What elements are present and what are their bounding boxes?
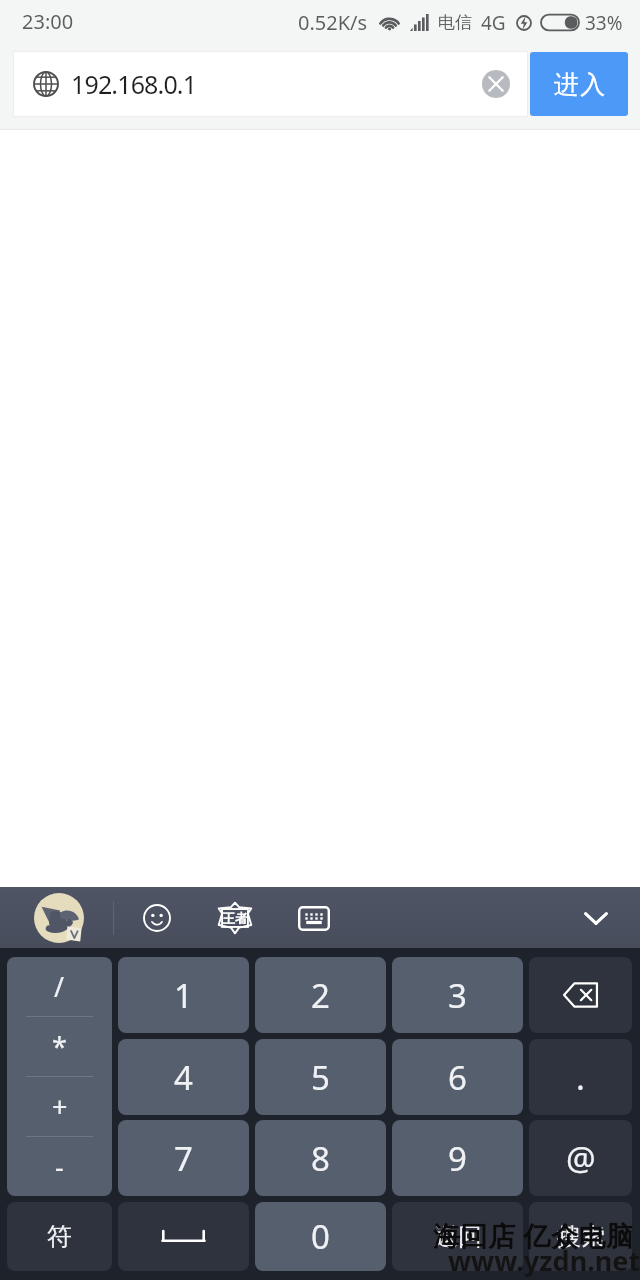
staticText: 4G (481, 10, 506, 36)
button[interactable]: 9 (392, 1120, 523, 1196)
staticText: 192.168.0.1 (71, 67, 197, 101)
button[interactable]: operators (7, 957, 112, 1196)
staticText: 6 (448, 1055, 467, 1100)
button[interactable]: Input method logo (34, 893, 84, 943)
button[interactable]: Keyboard layout (291, 895, 337, 941)
button[interactable]: Backspace (529, 957, 632, 1033)
button[interactable]: Space (118, 1202, 249, 1271)
staticText: 0 (311, 1214, 330, 1259)
staticText: 3 (448, 973, 467, 1018)
button[interactable]: 0 (255, 1202, 386, 1271)
button[interactable]: 6 (392, 1039, 523, 1115)
button[interactable]: 8 (255, 1120, 386, 1196)
staticText: * (52, 1028, 67, 1065)
button[interactable]: 搜索 (529, 1202, 632, 1271)
staticText: 电信 (438, 12, 472, 33)
staticText: - (55, 1148, 64, 1185)
staticText: 4 (174, 1055, 193, 1100)
button[interactable]: Game keyboard (212, 895, 258, 941)
staticText: 7 (174, 1136, 193, 1181)
staticText: 符 (47, 1221, 72, 1252)
button[interactable]: 4 (118, 1039, 249, 1115)
button[interactable]: Emoji (134, 895, 180, 941)
staticText: 1 (174, 973, 193, 1018)
staticText: / (54, 968, 65, 1005)
staticText: 9 (448, 1136, 467, 1181)
button[interactable]: 返回 (392, 1202, 523, 1271)
button[interactable]: 3 (392, 957, 523, 1033)
staticText: 0.52K/s (298, 9, 368, 36)
button[interactable]: 2 (255, 957, 386, 1033)
staticText: 王者 (222, 910, 248, 926)
button[interactable]: . (529, 1039, 632, 1115)
staticText: www.yzdn.net (448, 1242, 640, 1279)
staticText: 返回 (434, 1222, 482, 1252)
staticText: 23:00 (22, 8, 74, 35)
button[interactable]: Hide keyboard (573, 895, 619, 941)
staticText: 2 (311, 973, 330, 1018)
staticText: 5 (311, 1055, 330, 1100)
button[interactable]: 符 (7, 1202, 112, 1271)
staticText: + (52, 1088, 68, 1125)
button[interactable]: 192.168.0.1 (14, 52, 527, 116)
button[interactable]: 7 (118, 1120, 249, 1196)
staticText: 进入 (553, 69, 606, 100)
staticText: 海回店 亿众电脑 (433, 1217, 634, 1254)
staticText: @ (566, 1136, 596, 1181)
staticText: 搜索 (557, 1222, 605, 1252)
staticText: . (576, 1055, 585, 1100)
button[interactable]: 1 (118, 957, 249, 1033)
button[interactable]: @ (529, 1120, 632, 1196)
button[interactable]: Clear text (470, 58, 522, 110)
button[interactable]: 进入 (530, 52, 628, 116)
staticText: 8 (311, 1136, 330, 1181)
button[interactable]: 5 (255, 1039, 386, 1115)
staticText: 33% (585, 10, 623, 36)
